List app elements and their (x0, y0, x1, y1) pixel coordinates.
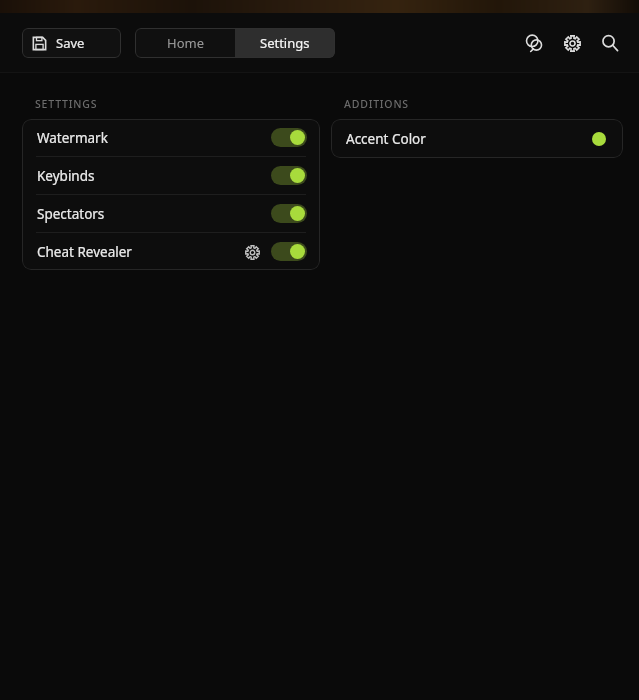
staticText: Cheat Revealer (37, 243, 132, 261)
button[interactable]: Toggle (271, 166, 307, 185)
button[interactable]: Configure Cheat Revealer (241, 241, 263, 263)
button[interactable]: Cheat Revealer (22, 233, 320, 270)
button[interactable]: Watermark (22, 119, 320, 156)
staticText: SETTTINGS (35, 97, 98, 111)
staticText: Settings (260, 34, 310, 52)
staticText: Keybinds (37, 167, 95, 185)
button[interactable]: Keybinds (22, 157, 320, 194)
button[interactable]: Settings (235, 28, 335, 58)
button[interactable]: Accent Color (331, 119, 623, 158)
button[interactable]: Search (593, 26, 627, 60)
button[interactable]: Save (22, 28, 121, 58)
button[interactable]: Settings (555, 26, 589, 60)
button[interactable]: Toggle (271, 242, 307, 261)
button[interactable]: Chat (517, 26, 551, 60)
staticText: ADDITIONS (344, 97, 409, 111)
button[interactable]: Toggle (271, 128, 307, 147)
staticText: Save (56, 34, 85, 52)
staticText: Spectators (37, 205, 105, 223)
button[interactable]: Spectators (22, 195, 320, 232)
button[interactable]: Home (135, 28, 235, 58)
staticText: Accent Color (346, 130, 426, 148)
staticText: Home (167, 34, 204, 52)
staticText: Watermark (37, 129, 108, 147)
button[interactable]: Toggle (271, 204, 307, 223)
